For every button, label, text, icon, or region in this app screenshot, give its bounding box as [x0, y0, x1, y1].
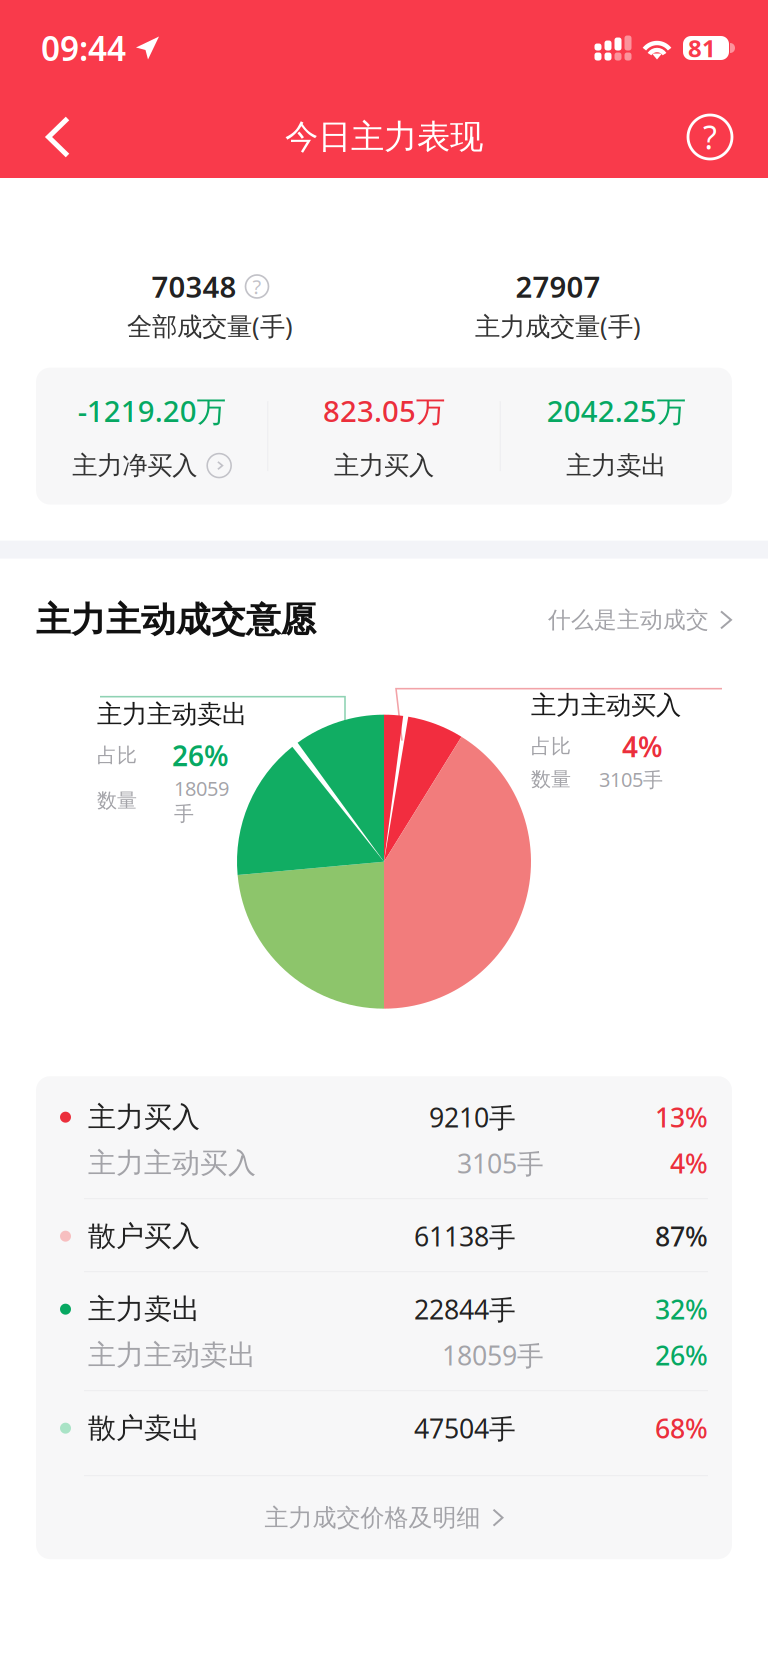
staticText: 主力买入: [88, 1100, 200, 1134]
staticText: 散户买入: [88, 1219, 200, 1253]
staticText: 2042.25万: [547, 391, 686, 430]
staticText: 26%: [172, 737, 229, 774]
button[interactable]: 返回: [10, 96, 106, 178]
staticText: 47504手: [414, 1410, 516, 1446]
staticText: ?: [252, 273, 261, 300]
staticText: 3105手: [599, 766, 663, 793]
staticText: 13%: [655, 1099, 708, 1135]
staticText: 4%: [622, 728, 663, 765]
staticText: 主力主动买入: [88, 1146, 256, 1180]
button[interactable]: 主力成交价格及明细: [60, 1476, 708, 1559]
staticText: 81: [688, 32, 716, 64]
staticText: 70348: [151, 267, 236, 306]
staticText: 26%: [655, 1337, 708, 1373]
staticText: 22844手: [414, 1291, 516, 1327]
staticText: 占比: [531, 734, 571, 759]
staticText: 主力卖出: [566, 450, 666, 481]
staticText: 27907: [515, 267, 600, 306]
button[interactable]: 什么是主动成交: [548, 606, 732, 634]
staticText: 主力主动卖出: [97, 699, 247, 730]
staticText: 数量: [531, 767, 571, 792]
staticText: 3105手: [457, 1145, 544, 1181]
staticText: 全部成交量(手): [127, 309, 293, 343]
staticText: 今日主力表现: [285, 116, 483, 157]
staticText: 什么是主动成交: [548, 606, 709, 634]
staticText: 68%: [655, 1410, 708, 1446]
staticText: ?: [703, 116, 717, 158]
staticText: 主力净买入: [72, 450, 197, 481]
staticText: 9210手: [429, 1099, 516, 1135]
staticText: 18059手: [442, 1337, 544, 1373]
staticText: 散户卖出: [88, 1411, 200, 1445]
staticText: 09:44: [41, 26, 126, 70]
staticText: 823.05万: [323, 391, 445, 430]
staticText: 占比: [97, 743, 137, 768]
staticText: 数量: [97, 788, 137, 813]
staticText: 主力买入: [334, 450, 434, 481]
staticText: 18059手: [174, 775, 229, 826]
staticText: 主力主动卖出: [88, 1338, 256, 1372]
staticText: 32%: [655, 1291, 708, 1327]
staticText: 61138手: [414, 1218, 516, 1254]
staticText: 主力成交量(手): [475, 309, 641, 343]
staticText: -1219.20万: [78, 391, 226, 430]
staticText: 主力主动成交意愿: [36, 599, 316, 641]
staticText: 4%: [670, 1145, 708, 1181]
staticText: 主力卖出: [88, 1292, 200, 1326]
staticText: 主力主动买入: [531, 690, 681, 721]
button[interactable]: 帮助: [662, 96, 758, 178]
staticText: 87%: [655, 1218, 708, 1254]
staticText: 主力成交价格及明细: [264, 1503, 480, 1532]
